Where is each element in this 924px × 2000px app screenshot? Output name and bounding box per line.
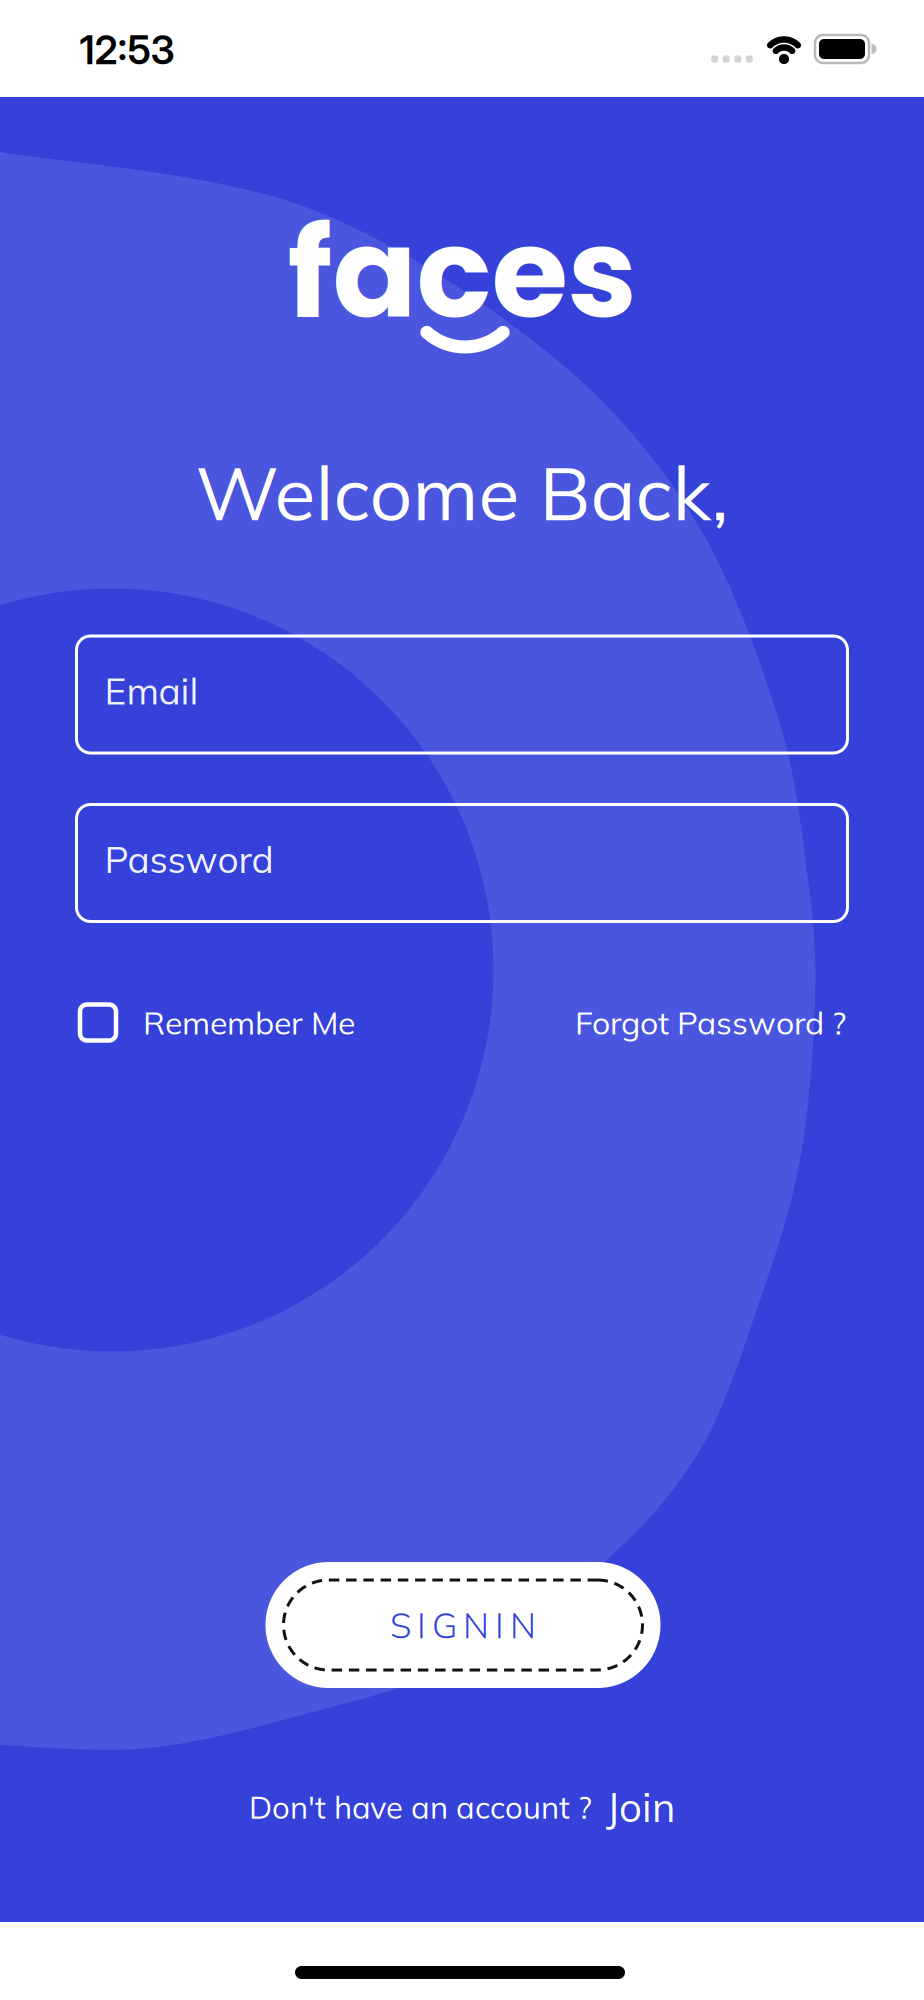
staticText: Don't have an account ? — [249, 1787, 592, 1826]
button[interactable]: Email — [76, 636, 847, 753]
staticText: Welcome Back, — [195, 445, 728, 539]
button[interactable]: Join — [606, 1782, 675, 1832]
staticText: faces — [287, 186, 636, 360]
staticText: Remember Me — [143, 1002, 355, 1043]
staticText: SIGNIN — [390, 1603, 536, 1647]
staticText: Password — [104, 836, 273, 882]
button[interactable]: SIGNIN — [265, 1562, 660, 1688]
button[interactable]: Forgot Password ? — [575, 1002, 846, 1043]
staticText: Join — [606, 1782, 675, 1832]
button[interactable]: Password — [76, 804, 847, 921]
staticText: 12:53 — [79, 26, 174, 74]
button[interactable]: Remember Me — [80, 1002, 355, 1043]
staticText: Email — [104, 667, 198, 714]
staticText: Forgot Password ? — [575, 1002, 846, 1043]
